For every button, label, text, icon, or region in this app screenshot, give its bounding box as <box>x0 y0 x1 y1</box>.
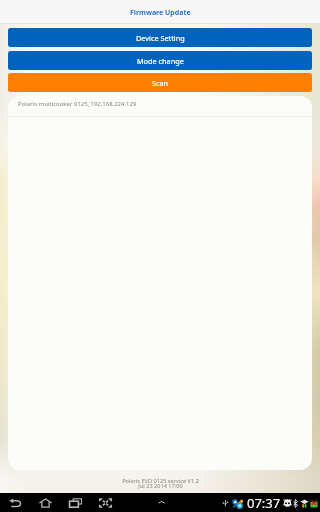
staticText: 07:37 <box>247 494 281 512</box>
button[interactable]: Expand notifications <box>151 493 171 512</box>
staticText: Firmware Update <box>130 8 191 18</box>
button[interactable]: Recent apps <box>65 493 85 512</box>
button[interactable]: Back <box>5 493 25 512</box>
staticText: Jul 23 2014 17:00 <box>138 482 183 490</box>
staticText: Scan <box>152 78 169 88</box>
button[interactable]: Device Setting <box>8 28 312 47</box>
staticText: Device Setting <box>136 33 185 43</box>
button[interactable]: Mode change <box>8 51 312 70</box>
button[interactable]: Scan <box>8 73 312 92</box>
button[interactable]: Screenshot <box>95 493 115 512</box>
staticText: Polaris EVO 0125 service V1.2 <box>122 477 199 485</box>
staticText: Mode change <box>137 56 184 66</box>
button[interactable]: Home <box>35 493 55 512</box>
staticText: Polaris multicooker 0125_192.168.224.129 <box>18 100 137 108</box>
button[interactable]: Polaris multicooker 0125_192.168.224.129 <box>8 96 312 116</box>
